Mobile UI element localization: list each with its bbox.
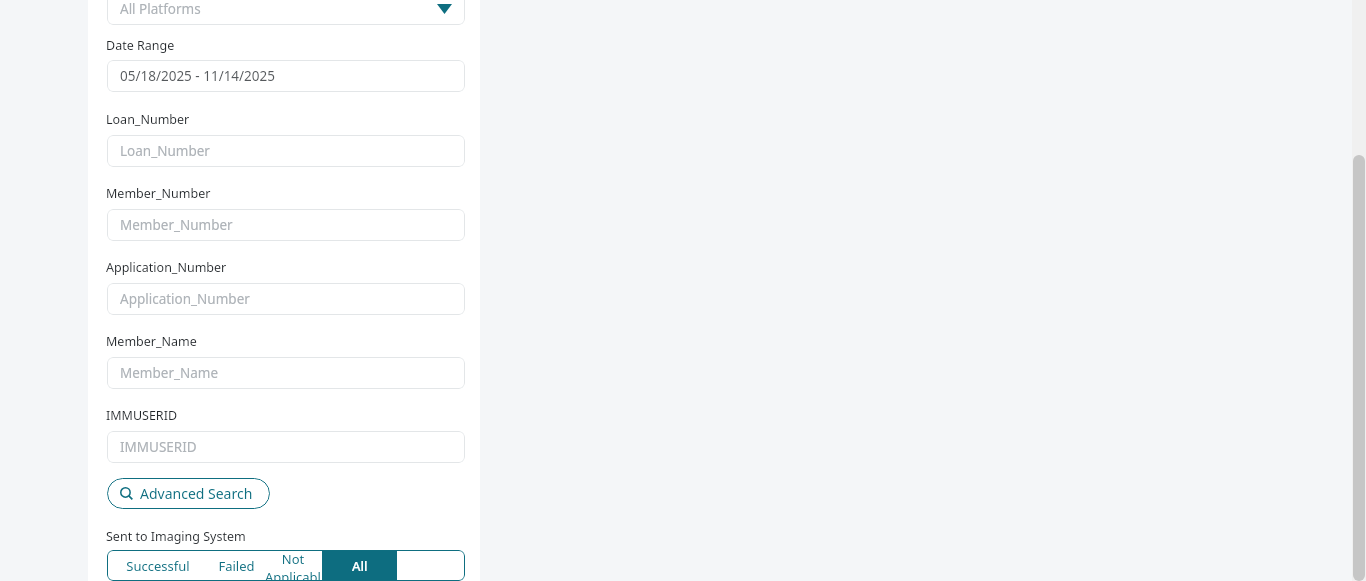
staticText: Successful	[126, 557, 190, 575]
staticText: 05/18/2025 - 11/14/2025	[120, 67, 276, 85]
button[interactable]: All	[322, 550, 397, 581]
button[interactable]: 05/18/2025 - 11/14/2025	[107, 60, 465, 92]
staticText: IMMUSERID	[106, 407, 178, 424]
staticText: All	[352, 557, 368, 575]
button[interactable]: Failed	[209, 550, 264, 581]
button[interactable]: Successful	[107, 550, 209, 581]
staticText: Application_Number	[106, 259, 227, 276]
button[interactable]: Member_Number	[107, 209, 465, 241]
staticText: IMMUSERID	[120, 438, 197, 456]
staticText: All Platforms	[120, 0, 201, 18]
staticText: Application_Number	[120, 290, 250, 308]
button[interactable]: Member_Name	[107, 357, 465, 389]
staticText: Not Applicable	[264, 550, 322, 581]
staticText: Member_Number	[106, 185, 211, 202]
button[interactable]: Loan_Number	[107, 135, 465, 167]
staticText: Advanced Search	[140, 484, 253, 503]
staticText: Member_Number	[120, 216, 233, 234]
button[interactable]: Advanced Search	[107, 478, 270, 509]
button[interactable]: Platform selector	[107, 0, 465, 25]
button[interactable]: Application_Number	[107, 283, 465, 315]
button[interactable]: IMMUSERID	[107, 431, 465, 463]
staticText: Failed	[218, 557, 255, 575]
staticText: Loan_Number	[106, 111, 190, 128]
staticText: Member_Name	[106, 333, 197, 350]
staticText: Sent to Imaging System	[106, 528, 246, 545]
button[interactable]: Not Applicable	[264, 550, 322, 581]
staticText: Date Range	[106, 37, 175, 54]
staticText: Member_Name	[120, 364, 219, 382]
staticText: Loan_Number	[120, 142, 210, 160]
